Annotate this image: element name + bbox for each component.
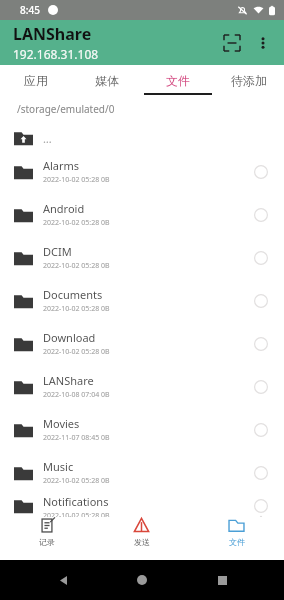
staticText: Alarms [43, 158, 80, 173]
staticText: 待添加 [231, 73, 267, 88]
button[interactable]: Back [46, 563, 80, 597]
button[interactable]: Scan QR code [216, 27, 248, 59]
button[interactable]: Home [125, 563, 159, 597]
button[interactable]: Notifications [0, 494, 284, 517]
staticText: 文件 [166, 73, 190, 88]
staticText: Music [43, 459, 74, 474]
staticText: LANShare [43, 373, 94, 388]
staticText: 2022-10-02 05:28 0B [43, 347, 110, 357]
button[interactable]: 文件 [142, 65, 213, 95]
button[interactable]: Download [0, 322, 284, 365]
button[interactable]: Recents [205, 563, 239, 597]
staticText: 2022-10-08 07:04 0B [43, 390, 110, 400]
staticText: 2022-10-02 05:28 0B [43, 175, 110, 185]
staticText: … [43, 131, 52, 146]
staticText: 应用 [24, 73, 48, 88]
staticText: 记录 [39, 537, 55, 547]
staticText: 2022-11-07 08:45 0B [43, 433, 110, 443]
staticText: Documents [43, 287, 103, 302]
button[interactable]: … [0, 126, 284, 150]
button[interactable]: 发送 [94, 517, 189, 547]
staticText: Download [43, 330, 96, 345]
button[interactable]: LANShare [0, 365, 284, 408]
staticText: LANShare [13, 23, 92, 45]
staticText: 媒体 [95, 73, 119, 88]
button[interactable]: 应用 [0, 65, 71, 95]
button[interactable]: 记录 [0, 517, 94, 547]
staticText: DCIM [43, 244, 72, 259]
staticText: /storage/emulated/0 [17, 102, 115, 116]
staticText: 2022-10-02 05:28 0B [43, 476, 110, 486]
staticText: 文件 [229, 537, 245, 547]
button[interactable]: More options [248, 28, 278, 58]
button[interactable]: Android [0, 193, 284, 236]
staticText: Notifications [43, 494, 109, 509]
button[interactable]: Alarms [0, 150, 284, 193]
staticText: 2022-10-02 05:28 0B [43, 511, 110, 517]
staticText: 发送 [134, 537, 150, 547]
staticText: Android [43, 201, 85, 216]
button[interactable]: DCIM [0, 236, 284, 279]
button[interactable]: 媒体 [71, 65, 142, 95]
button[interactable]: Movies [0, 408, 284, 451]
staticText: 192.168.31.108 [13, 46, 99, 62]
staticText: 8:45 [20, 3, 40, 17]
staticText: 2022-10-02 05:28 0B [43, 218, 110, 228]
button[interactable]: Music [0, 451, 284, 494]
button[interactable]: 待添加 [213, 65, 284, 95]
staticText: 2022-10-02 05:28 0B [43, 304, 110, 314]
staticText: Movies [43, 416, 80, 431]
button[interactable]: 文件 [189, 517, 284, 547]
staticText: 2022-10-02 05:28 0B [43, 261, 110, 271]
button[interactable]: Documents [0, 279, 284, 322]
